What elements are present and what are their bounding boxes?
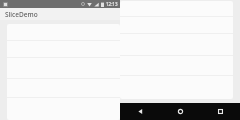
button[interactable]: Home xyxy=(160,103,200,120)
button[interactable]: Back xyxy=(120,103,160,120)
staticText: SliceDemo xyxy=(5,10,38,19)
button[interactable]: Recent apps xyxy=(200,103,240,120)
staticText: 12:13 xyxy=(106,1,118,7)
button[interactable]: SliceDemo xyxy=(0,8,120,20)
